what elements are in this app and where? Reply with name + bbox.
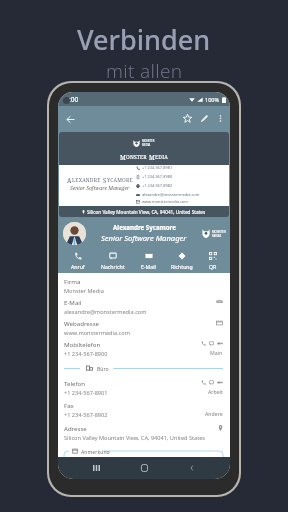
- staticText: Nachricht: [101, 263, 125, 270]
- staticText: EDIA: [155, 154, 168, 161]
- staticText: alexandre@monstermedia.com: [142, 192, 200, 197]
- staticText: Silicon Valley Mountain View, CA, 94041,…: [64, 434, 206, 442]
- staticText: Alexandre Sycamore: [113, 223, 176, 231]
- staticText: Fax: [64, 401, 74, 409]
- staticText: Anmerkung: [81, 448, 110, 454]
- button[interactable]: Fax: [64, 399, 223, 420]
- staticText: M: [149, 153, 155, 161]
- staticText: +1 234-567-8982: [142, 183, 173, 188]
- button[interactable]: Nachricht: [98, 251, 128, 271]
- staticText: Adresse: [64, 424, 87, 432]
- staticText: Monster Media: [64, 287, 104, 295]
- button[interactable]: Richtung: [168, 251, 196, 271]
- button[interactable]: E-Mail: [138, 251, 159, 271]
- staticText: mit allen: [106, 58, 183, 84]
- staticText: MONSTER: [142, 139, 155, 143]
- staticText: Telefon: [64, 379, 85, 387]
- button[interactable]: Anmerkung: [64, 451, 223, 457]
- button[interactable]: Adresse: [64, 422, 223, 443]
- staticText: YCAMORE: [107, 177, 133, 184]
- staticText: Mobiltelefon: [64, 340, 101, 348]
- staticText: +1 234-567-8902: [64, 411, 108, 419]
- button[interactable]: More options: [213, 111, 228, 126]
- staticText: +1 234-567-8901: [64, 389, 108, 397]
- staticText: E-Mail: [64, 298, 82, 306]
- staticText: MEDIA: [212, 234, 222, 238]
- staticText: Senior Software Manager: [70, 185, 130, 192]
- staticText: A: [67, 176, 72, 184]
- button[interactable]: Mobiltelefon: [64, 338, 223, 359]
- button[interactable]: Edit: [196, 110, 213, 127]
- staticText: S: [103, 176, 107, 184]
- button[interactable]: Anruf: [68, 251, 88, 271]
- staticText: ONSTER: [126, 154, 149, 161]
- staticText: E-Mail: [141, 263, 156, 270]
- button[interactable]: Telefon: [64, 377, 223, 398]
- button[interactable]: Firma: [64, 275, 223, 296]
- staticText: :00: [69, 95, 79, 104]
- button[interactable]: Back: [61, 110, 79, 128]
- staticText: Andere: [205, 410, 223, 417]
- staticText: +1 234-567-8981: [142, 165, 173, 170]
- staticText: Arbeit: [208, 388, 223, 395]
- staticText: Verbinden: [77, 21, 211, 58]
- button[interactable]: QR: [206, 251, 220, 271]
- staticText: M: [120, 153, 126, 161]
- button[interactable]: Webadresse: [64, 317, 223, 338]
- staticText: Richtung: [171, 263, 193, 270]
- staticText: Webadresse: [64, 319, 100, 327]
- staticText: +1 234-567-8900: [64, 350, 108, 358]
- button[interactable]: Home: [134, 458, 154, 478]
- staticText: MONSTER: [212, 230, 226, 234]
- staticText: Firma: [64, 277, 81, 285]
- staticText: QR: [209, 263, 217, 270]
- staticText: LEXANDRE: [72, 177, 103, 184]
- button[interactable]: Favorite: [179, 110, 196, 127]
- staticText: Anruf: [71, 263, 85, 270]
- button[interactable]: E-Mail: [64, 296, 223, 317]
- staticText: +1 234-567-8980: [142, 174, 173, 179]
- staticText: Büro: [97, 365, 109, 372]
- staticText: 100%: [205, 96, 220, 103]
- button[interactable]: Recents: [86, 458, 106, 478]
- staticText: alexandre@monstermedia.com: [64, 308, 147, 316]
- staticText: Senior Software Manager: [101, 233, 187, 243]
- staticText: Main: [210, 349, 223, 356]
- button[interactable]: Back: [182, 458, 202, 478]
- staticText: www.monstermedia.com: [64, 329, 130, 337]
- staticText: www.monstermedia.com: [142, 199, 188, 204]
- staticText: Silicon Valley Mountain View, CA, 94041,…: [87, 209, 206, 215]
- staticText: MEDIA: [142, 143, 151, 147]
